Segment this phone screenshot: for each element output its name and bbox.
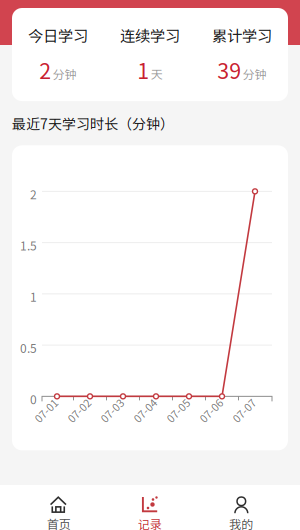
staticText: 0 (30, 390, 37, 408)
staticText: 连续学习 (120, 24, 180, 46)
staticText: 07-06 (197, 403, 225, 418)
staticText: 分钟 (53, 65, 77, 82)
staticText: 0.5 (20, 339, 37, 356)
staticText: 累计学习 (212, 24, 272, 46)
staticText: 2 (30, 185, 37, 203)
staticText: 07-02 (65, 403, 93, 418)
staticText: 07-03 (98, 403, 126, 418)
staticText: 07-04 (131, 403, 159, 418)
staticText: 07-07 (230, 403, 258, 418)
staticText: 07-01 (32, 403, 60, 418)
staticText: 最近7天学习时长（分钟） (12, 113, 174, 133)
button[interactable]: 首页 (13, 485, 104, 530)
staticText: 记录 (138, 515, 162, 530)
staticText: 39 (217, 54, 241, 85)
staticText: 2 (39, 54, 51, 85)
staticText: 我的 (229, 515, 253, 530)
staticText: 今日学习 (28, 24, 88, 46)
staticText: 1.5 (20, 237, 37, 254)
button[interactable]: 记录 (104, 485, 196, 530)
staticText: 天 (151, 65, 163, 82)
button[interactable]: 我的 (196, 485, 287, 530)
staticText: 1 (137, 54, 149, 85)
staticText: 首页 (47, 515, 71, 530)
staticText: 07-05 (164, 403, 192, 418)
staticText: 分钟 (243, 65, 267, 82)
staticText: 1 (30, 288, 37, 305)
